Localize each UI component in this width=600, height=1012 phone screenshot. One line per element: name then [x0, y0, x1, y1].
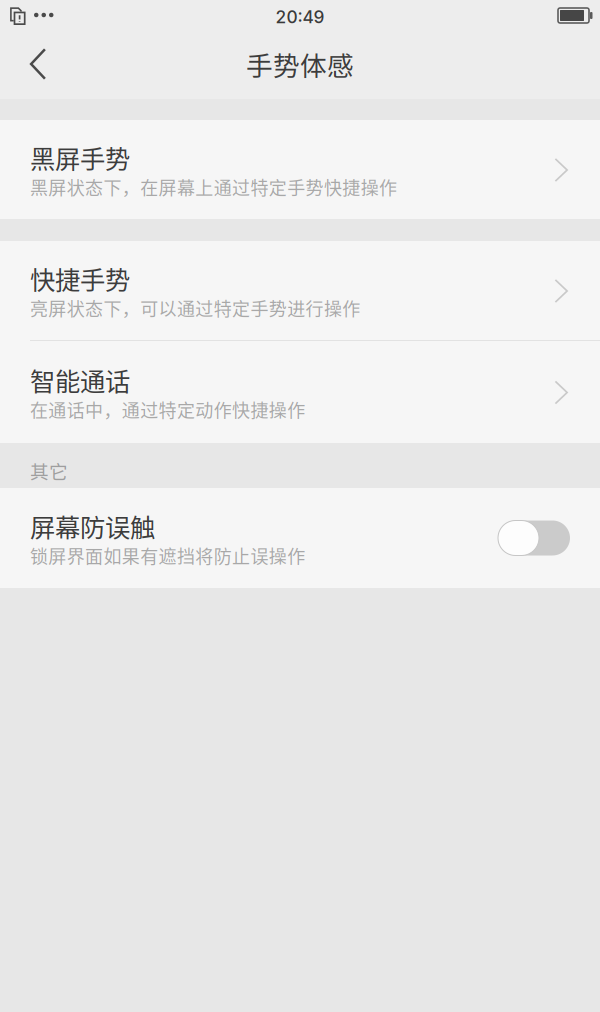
staticText: 锁屏界面如果有遮挡将防止误操作: [30, 542, 305, 568]
staticText: 黑屏手势: [30, 139, 130, 176]
button[interactable]: 黑屏手势: [0, 120, 600, 219]
staticText: 手势体感: [246, 45, 354, 83]
staticText: 其它: [30, 457, 68, 484]
staticText: 在通话中，通过特定动作快捷操作: [30, 396, 305, 422]
staticText: 快捷手势: [30, 260, 130, 297]
staticText: 20:49: [275, 6, 324, 27]
staticText: 黑屏状态下，在屏幕上通过特定手势快捷操作: [30, 174, 397, 200]
staticText: 智能通话: [30, 362, 130, 398]
button[interactable]: 智能通话: [0, 341, 600, 443]
button[interactable]: 快捷手势: [0, 241, 600, 340]
staticText: 屏幕防误触: [30, 508, 155, 544]
staticText: 亮屏状态下，可以通过特定手势进行操作: [30, 295, 360, 321]
button[interactable]: Back: [0, 34, 76, 99]
button[interactable]: 屏幕防误触: [0, 488, 600, 588]
button[interactable]: 屏幕防误触 switch, off: [498, 520, 570, 555]
